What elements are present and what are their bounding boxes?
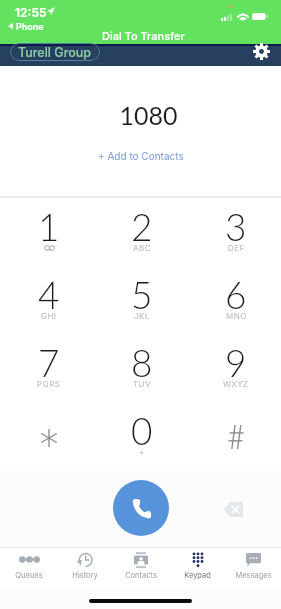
button[interactable]: Keypad	[169, 548, 225, 586]
button[interactable]: 6	[189, 272, 281, 338]
button[interactable]: 3	[189, 204, 281, 270]
staticText: TUV	[133, 379, 151, 389]
staticText: 1080	[8, 100, 281, 130]
staticText: Dial To Transfer	[102, 29, 185, 42]
staticText: +	[139, 447, 145, 457]
staticText: 6	[225, 272, 247, 316]
staticText: 5	[131, 272, 153, 316]
staticText: 12:55	[15, 5, 47, 20]
button[interactable]: Queues	[0, 548, 57, 586]
button[interactable]: 5	[95, 272, 189, 338]
button[interactable]: Contacts	[113, 548, 169, 586]
staticText: GHI	[41, 311, 57, 321]
button[interactable]: + Add to Contacts	[92, 147, 190, 165]
staticText: Turell Group	[18, 45, 92, 60]
button[interactable]: 8	[95, 340, 189, 406]
staticText: DEF	[228, 243, 245, 253]
staticText: Phone	[16, 21, 44, 32]
staticText: 7	[38, 340, 60, 384]
staticText: Messages	[235, 571, 272, 580]
button[interactable]: 7	[2, 340, 95, 406]
button[interactable]: Call	[113, 480, 169, 536]
button[interactable]: 0	[95, 408, 189, 474]
button[interactable]: 1	[2, 204, 95, 270]
button[interactable]: History	[57, 548, 113, 586]
staticText: 4	[38, 272, 60, 316]
staticText: ABC	[133, 243, 151, 253]
staticText: Keypad	[184, 571, 211, 580]
button[interactable]: 9	[189, 340, 281, 406]
staticText: WXYZ	[223, 379, 249, 389]
button[interactable]: Turell Group	[10, 43, 100, 61]
staticText: 9	[225, 340, 247, 384]
staticText: MNO	[226, 311, 247, 321]
button[interactable]: Backspace	[216, 492, 251, 526]
button[interactable]: 2	[95, 204, 189, 270]
staticText: PQRS	[37, 379, 61, 389]
staticText: History	[72, 571, 98, 580]
staticText: Contacts	[125, 571, 157, 580]
staticText: 0	[131, 408, 153, 452]
staticText: Queues	[15, 571, 43, 580]
button[interactable]: Settings	[250, 41, 272, 61]
staticText: 3	[225, 204, 247, 248]
staticText: 1	[38, 204, 60, 248]
staticText: 8	[131, 340, 153, 384]
button[interactable]	[2, 408, 95, 474]
button[interactable]: 4	[2, 272, 95, 338]
staticText: JKL	[134, 311, 150, 321]
button[interactable]	[189, 408, 281, 474]
staticText: + Add to Contacts	[98, 150, 184, 162]
staticText: 2	[131, 204, 153, 248]
button[interactable]: Messages	[225, 548, 281, 586]
